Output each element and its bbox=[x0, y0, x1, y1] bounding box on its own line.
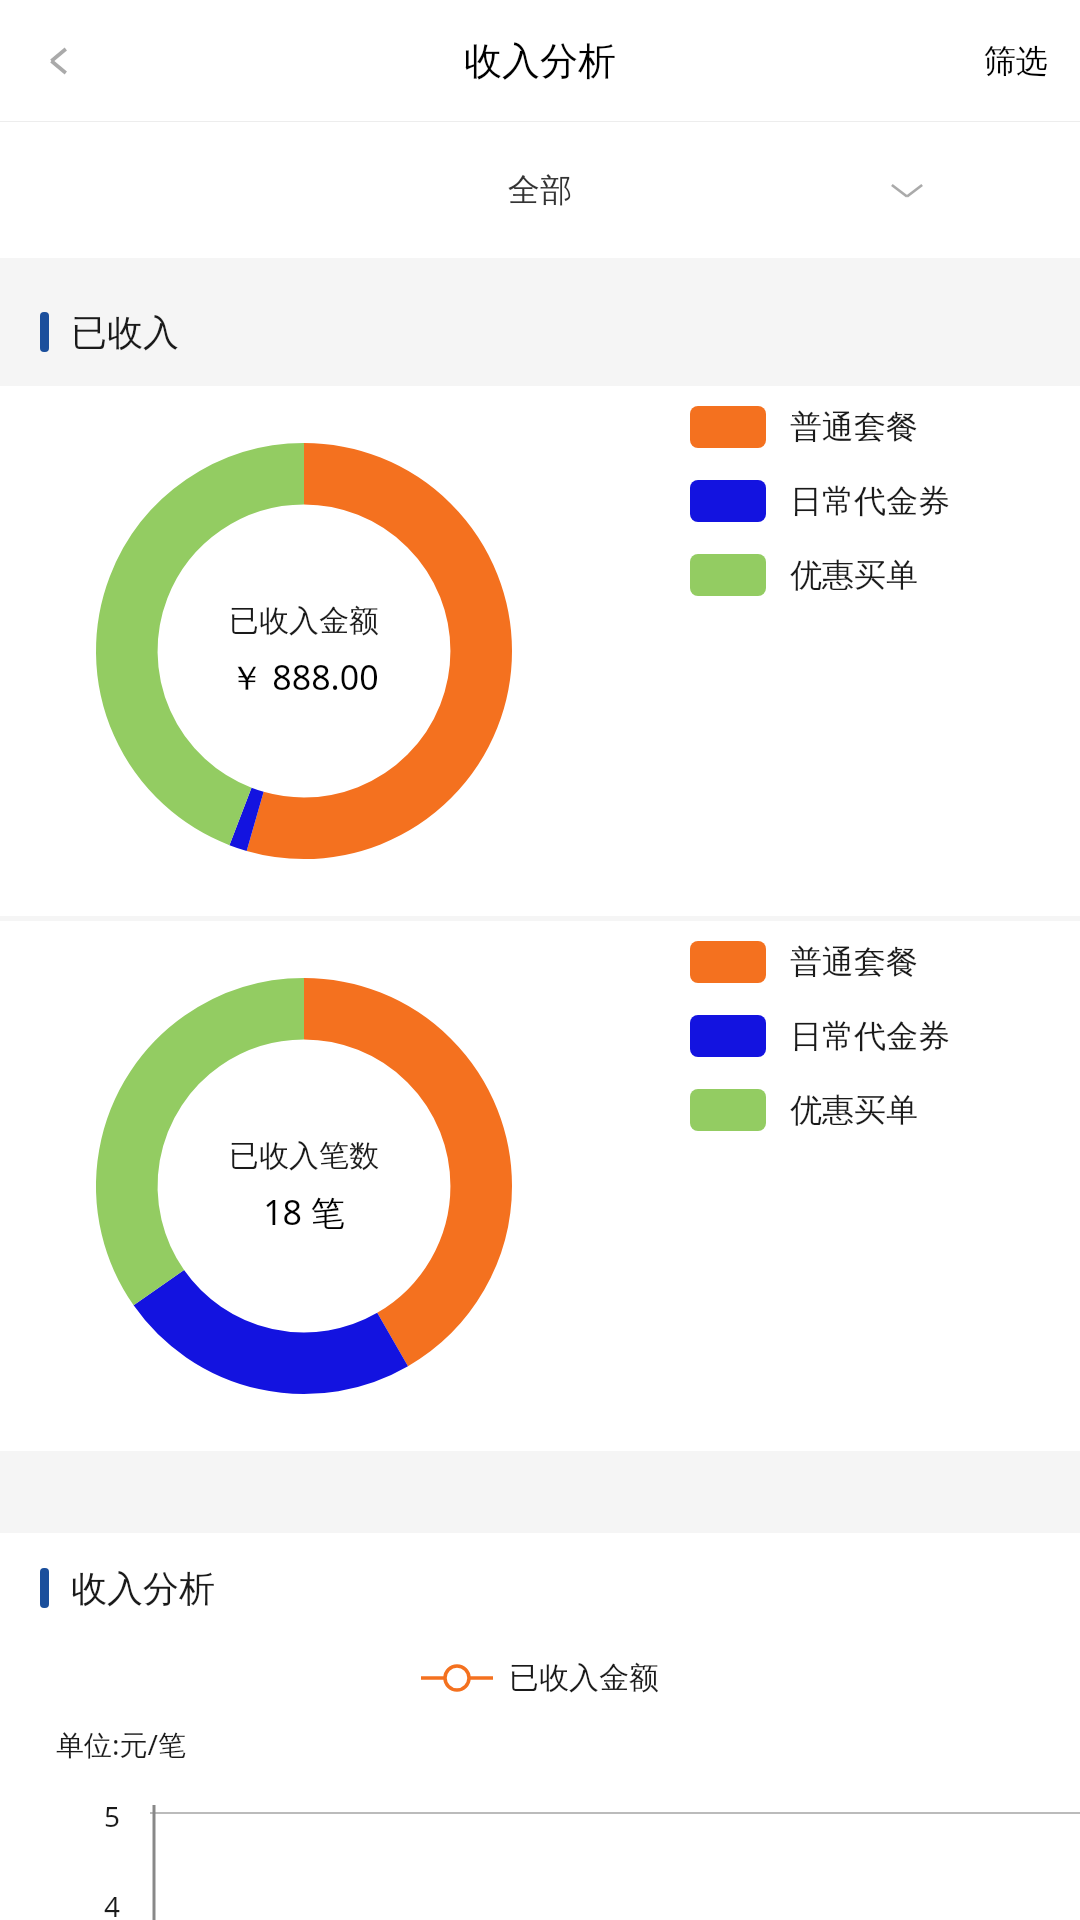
staticText: 收入分析 bbox=[71, 1566, 215, 1611]
staticText: 全部 bbox=[508, 170, 572, 210]
staticText: 已收入笔数 bbox=[229, 1137, 379, 1175]
button[interactable]: 日常代金券 bbox=[690, 1015, 950, 1057]
staticText: 4 bbox=[104, 1887, 121, 1920]
button[interactable]: Back bbox=[26, 26, 96, 96]
staticText: 优惠买单 bbox=[790, 1090, 918, 1130]
other: Expand bbox=[884, 167, 930, 213]
staticText: 已收入金额 bbox=[509, 1659, 659, 1697]
staticText: 普通套餐 bbox=[790, 407, 918, 447]
button[interactable]: 日常代金券 bbox=[690, 480, 950, 522]
staticText: 5 bbox=[104, 1797, 121, 1835]
staticText: 筛选 bbox=[984, 41, 1048, 81]
button[interactable]: 筛选 bbox=[952, 21, 1080, 101]
staticText: 优惠买单 bbox=[790, 555, 918, 595]
button[interactable]: 优惠买单 bbox=[690, 554, 918, 596]
staticText: 日常代金券 bbox=[790, 1016, 950, 1056]
staticText: 单位:元/笔 bbox=[56, 1725, 186, 1763]
staticText: 日常代金券 bbox=[790, 481, 950, 521]
staticText: ￥ 888.00 bbox=[229, 654, 379, 700]
staticText: 已收入 bbox=[71, 310, 179, 355]
staticText: 收入分析 bbox=[464, 37, 616, 85]
staticText: 18 笔 bbox=[263, 1189, 345, 1235]
button[interactable]: 优惠买单 bbox=[690, 1089, 918, 1131]
button[interactable]: 普通套餐 bbox=[690, 406, 918, 448]
button[interactable]: 全部 bbox=[0, 122, 1080, 258]
staticText: 普通套餐 bbox=[790, 942, 918, 982]
staticText: 已收入金额 bbox=[229, 602, 379, 640]
button[interactable]: 普通套餐 bbox=[690, 941, 918, 983]
